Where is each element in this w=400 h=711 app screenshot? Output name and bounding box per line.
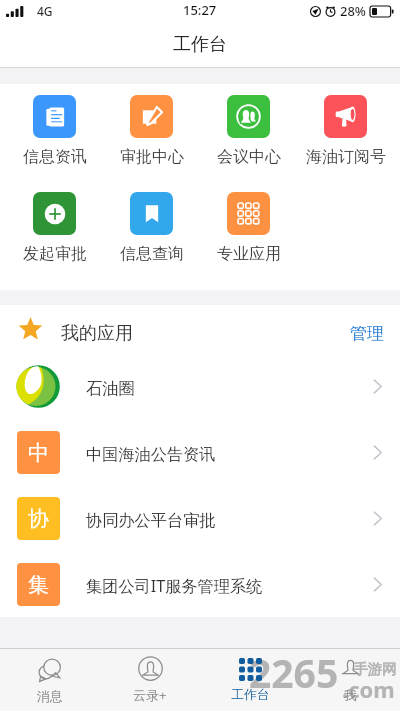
button[interactable]: 审批中心 [103,95,200,167]
staticText: 信息查询 [120,244,184,264]
button[interactable]: 信息资讯 [6,95,103,167]
button[interactable]: 专业应用 [200,192,297,264]
staticText: 会议中心 [217,147,281,167]
button[interactable]: 集 [0,551,400,617]
staticText: 信息资讯 [23,147,87,167]
staticText: 中国海油公告资讯 [86,444,216,464]
staticText: 协 [28,506,49,532]
button[interactable]: 我 [300,649,400,711]
staticText: 中 [28,440,49,466]
staticText: 消息 [37,688,63,704]
staticText: 4G [37,3,53,19]
staticText: 2265 [249,646,339,699]
staticText: 15:27 [183,1,217,19]
button[interactable]: 云录+ [100,649,200,711]
button[interactable]: 石油圈 [0,353,400,419]
button[interactable]: 我的应用 [0,305,400,353]
staticText: .com [342,674,395,704]
staticText: 云录+ [133,686,167,704]
staticText: 审批中心 [120,147,184,167]
staticText: 集团公司IT服务管理系统 [86,575,263,597]
staticText: 专业应用 [217,244,281,264]
button[interactable]: 管理 [350,319,384,340]
button[interactable]: 消息 [0,649,100,711]
staticText: 发起审批 [23,244,87,264]
staticText: 手游网 [353,660,397,678]
staticText: 协同办公平台审批 [86,510,216,530]
button[interactable]: 发起审批 [6,192,103,264]
staticText: 管理 [350,323,384,344]
button[interactable]: 协 [0,485,400,551]
staticText: 工作台 [173,33,227,56]
button[interactable]: 信息查询 [103,192,200,264]
staticText: 28% [340,2,366,20]
staticText: 石油圈 [86,378,135,398]
button[interactable]: 海油订阅号 [297,95,394,167]
staticText: 集 [28,572,49,598]
button[interactable]: 工作台 [200,649,300,711]
staticText: 我的应用 [61,322,133,345]
staticText: 工作台 [231,686,270,702]
staticText: 海油订阅号 [306,147,386,167]
button[interactable]: 中 [0,419,400,485]
button[interactable]: 会议中心 [200,95,297,167]
staticText: 我 [344,687,357,703]
